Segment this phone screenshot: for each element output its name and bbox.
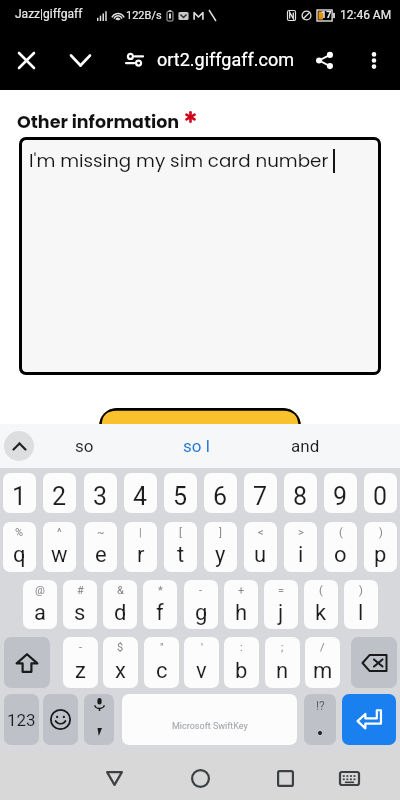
staticText: $ bbox=[117, 641, 124, 654]
staticText: l bbox=[358, 600, 364, 626]
staticText: s bbox=[74, 600, 86, 626]
staticText: g bbox=[195, 600, 208, 626]
staticText: [ bbox=[179, 526, 182, 539]
button[interactable]: / bbox=[305, 637, 340, 688]
button[interactable]: + bbox=[224, 580, 258, 629]
staticText: v bbox=[196, 658, 207, 684]
staticText: !? bbox=[316, 699, 325, 713]
button[interactable]: Hide keyboard bbox=[326, 755, 372, 800]
button[interactable]: % bbox=[3, 522, 36, 572]
button[interactable]: [ bbox=[164, 522, 197, 572]
button[interactable]: ) bbox=[364, 522, 397, 572]
staticText: ( bbox=[339, 526, 343, 539]
staticText: e bbox=[95, 542, 107, 568]
staticText: | bbox=[139, 526, 142, 539]
button[interactable]: 5 bbox=[164, 473, 197, 513]
button[interactable]: - bbox=[184, 580, 218, 629]
button[interactable]: | bbox=[124, 522, 157, 572]
button[interactable]: > bbox=[284, 522, 317, 572]
button[interactable]: Voice input bbox=[84, 694, 114, 745]
staticText: q bbox=[13, 542, 26, 568]
staticText: a bbox=[34, 600, 46, 626]
button[interactable]: 1 bbox=[3, 473, 36, 513]
staticText: I'm missing my sim card number bbox=[29, 148, 329, 174]
staticText: b bbox=[235, 658, 248, 684]
button[interactable]: Site settings bbox=[118, 44, 150, 76]
staticText: r bbox=[137, 542, 145, 568]
staticText: ) bbox=[359, 584, 363, 597]
staticText: 8 bbox=[293, 482, 308, 511]
button[interactable]: & bbox=[103, 580, 137, 629]
staticText: m bbox=[313, 658, 333, 684]
button[interactable]: ( bbox=[304, 580, 338, 629]
staticText: so l bbox=[183, 436, 210, 456]
button[interactable]: ^ bbox=[43, 522, 76, 572]
staticText: w bbox=[51, 542, 68, 568]
button[interactable]: 0 bbox=[364, 473, 397, 513]
button[interactable]: 4 bbox=[124, 473, 157, 513]
button[interactable]: Enter bbox=[342, 694, 396, 745]
button[interactable]: Recents bbox=[262, 755, 308, 800]
button[interactable]: : bbox=[224, 637, 259, 688]
staticText: Other information bbox=[17, 110, 180, 135]
button[interactable]: < bbox=[244, 522, 277, 572]
button[interactable]: 3 bbox=[84, 473, 117, 513]
staticText: ~ bbox=[97, 526, 105, 539]
button[interactable]: More options bbox=[354, 40, 394, 80]
button[interactable]: " bbox=[144, 637, 179, 688]
button[interactable]: $ bbox=[103, 637, 138, 688]
staticText: 2 bbox=[52, 482, 67, 511]
staticText: 122B/s bbox=[126, 9, 162, 22]
button[interactable]: 9 bbox=[324, 473, 357, 513]
button[interactable]: Emoji bbox=[43, 694, 78, 745]
button[interactable]: # bbox=[63, 580, 97, 629]
button[interactable]: Expand suggestions bbox=[4, 431, 34, 461]
button[interactable]: Collapse bbox=[60, 40, 100, 80]
button[interactable]: ] bbox=[204, 522, 237, 572]
button[interactable]: ( bbox=[324, 522, 357, 572]
button[interactable]: ' bbox=[184, 637, 219, 688]
button[interactable]: Shift bbox=[4, 637, 50, 688]
button[interactable]: - bbox=[63, 637, 98, 688]
button[interactable]: 7 bbox=[244, 473, 277, 513]
staticText: 3 bbox=[93, 482, 108, 511]
button[interactable]: 123 bbox=[4, 694, 39, 745]
staticText: d bbox=[114, 600, 127, 626]
button[interactable]: I'm missing my sim card number bbox=[19, 137, 381, 375]
staticText: ort2.giffgaff.com bbox=[157, 49, 294, 70]
staticText: / bbox=[320, 641, 325, 654]
button[interactable]: ~ bbox=[84, 522, 117, 572]
button[interactable]: @ bbox=[23, 580, 57, 629]
staticText: 6 bbox=[213, 482, 228, 511]
staticText: 12:46 AM bbox=[340, 8, 392, 22]
staticText: 17 bbox=[321, 10, 332, 21]
staticText: o bbox=[334, 542, 347, 568]
staticText: 1 bbox=[12, 482, 27, 511]
staticText: Jazz|giffgaff bbox=[15, 7, 83, 21]
button[interactable]: Backspace bbox=[351, 637, 397, 688]
staticText: 9 bbox=[333, 482, 348, 511]
button[interactable] bbox=[99, 408, 301, 438]
button[interactable]: !? bbox=[304, 694, 336, 745]
button[interactable]: * bbox=[143, 580, 177, 629]
button[interactable]: Close bbox=[6, 40, 46, 80]
staticText: + bbox=[238, 584, 245, 597]
staticText: 0 bbox=[373, 482, 388, 511]
staticText: ] bbox=[219, 526, 222, 539]
button[interactable]: Space bbox=[122, 694, 297, 745]
button[interactable]: Share bbox=[304, 40, 344, 80]
staticText: z bbox=[75, 658, 86, 684]
staticText: ) bbox=[379, 526, 383, 539]
staticText: h bbox=[235, 600, 248, 626]
button[interactable]: 2 bbox=[43, 473, 76, 513]
button[interactable]: ; bbox=[265, 637, 300, 688]
staticText: ( bbox=[319, 584, 323, 597]
button[interactable]: Home bbox=[177, 755, 223, 800]
button[interactable]: = bbox=[264, 580, 298, 629]
button[interactable]: Back bbox=[91, 755, 137, 800]
button[interactable]: ) bbox=[344, 580, 378, 629]
staticText: so bbox=[75, 436, 94, 456]
staticText: and bbox=[291, 436, 320, 456]
button[interactable]: 8 bbox=[284, 473, 317, 513]
button[interactable]: 6 bbox=[204, 473, 237, 513]
